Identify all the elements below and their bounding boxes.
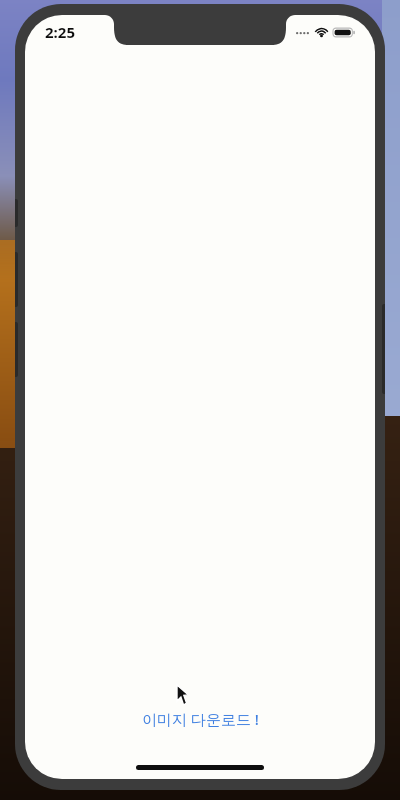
other: Home indicator bbox=[136, 765, 264, 770]
staticText: 2:25 bbox=[45, 22, 75, 42]
staticText: 이미지 다운로드 ! bbox=[142, 709, 259, 729]
button[interactable]: 이미지 다운로드 ! bbox=[124, 703, 277, 735]
